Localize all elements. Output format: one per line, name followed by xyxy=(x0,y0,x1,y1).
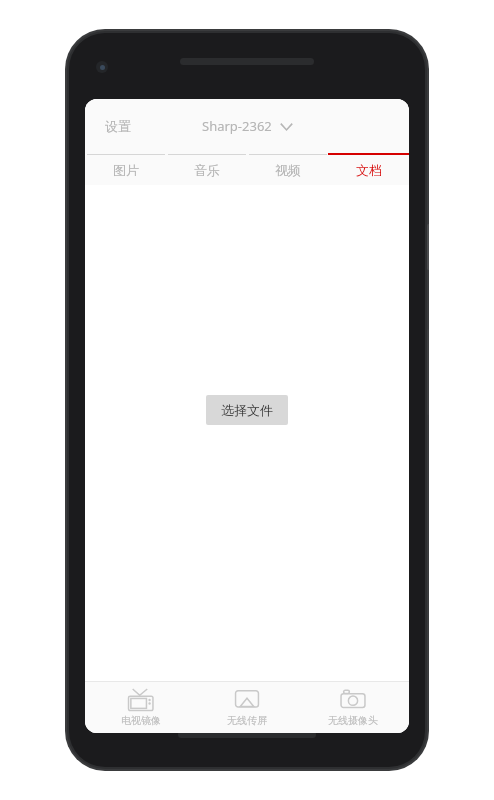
button[interactable]: Sharp-2362 xyxy=(192,111,303,141)
button[interactable]: 视频 xyxy=(247,155,328,185)
button[interactable]: TV mirroring xyxy=(91,682,191,733)
button[interactable]: 选择文件 xyxy=(206,395,288,425)
staticText: 电视镜像 xyxy=(121,714,161,727)
staticText: 无线传屏 xyxy=(227,714,267,727)
staticText: 音乐 xyxy=(194,162,220,178)
staticText: 图片 xyxy=(113,162,139,178)
button[interactable]: 文档 xyxy=(328,155,409,185)
staticText: 无线摄像头 xyxy=(328,714,378,727)
button[interactable]: Wireless camera xyxy=(303,682,403,733)
button[interactable]: 设置 xyxy=(93,110,143,142)
staticText: 设置 xyxy=(105,118,131,134)
button[interactable]: Wireless screen cast xyxy=(197,682,297,733)
button[interactable]: 图片 xyxy=(85,155,166,185)
staticText: 选择文件 xyxy=(221,402,273,418)
staticText: 视频 xyxy=(275,162,301,178)
staticText: 文档 xyxy=(356,162,382,178)
button[interactable]: 音乐 xyxy=(166,155,247,185)
staticText: Sharp-2362 xyxy=(202,117,272,135)
